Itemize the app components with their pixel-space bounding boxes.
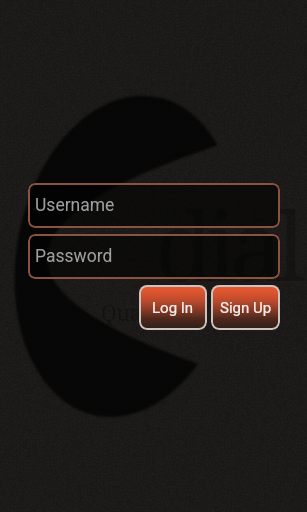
button[interactable]: Password <box>28 234 280 279</box>
staticText: Password <box>35 246 113 267</box>
staticText: Log In <box>152 299 194 317</box>
staticText: Username <box>35 195 115 216</box>
button[interactable]: Log In <box>139 285 207 330</box>
staticText: dial <box>155 179 299 308</box>
staticText: Quality <box>101 299 175 328</box>
button[interactable]: Sign Up <box>211 285 280 330</box>
staticText: Sign Up <box>220 299 272 317</box>
button[interactable]: Username <box>28 183 280 228</box>
